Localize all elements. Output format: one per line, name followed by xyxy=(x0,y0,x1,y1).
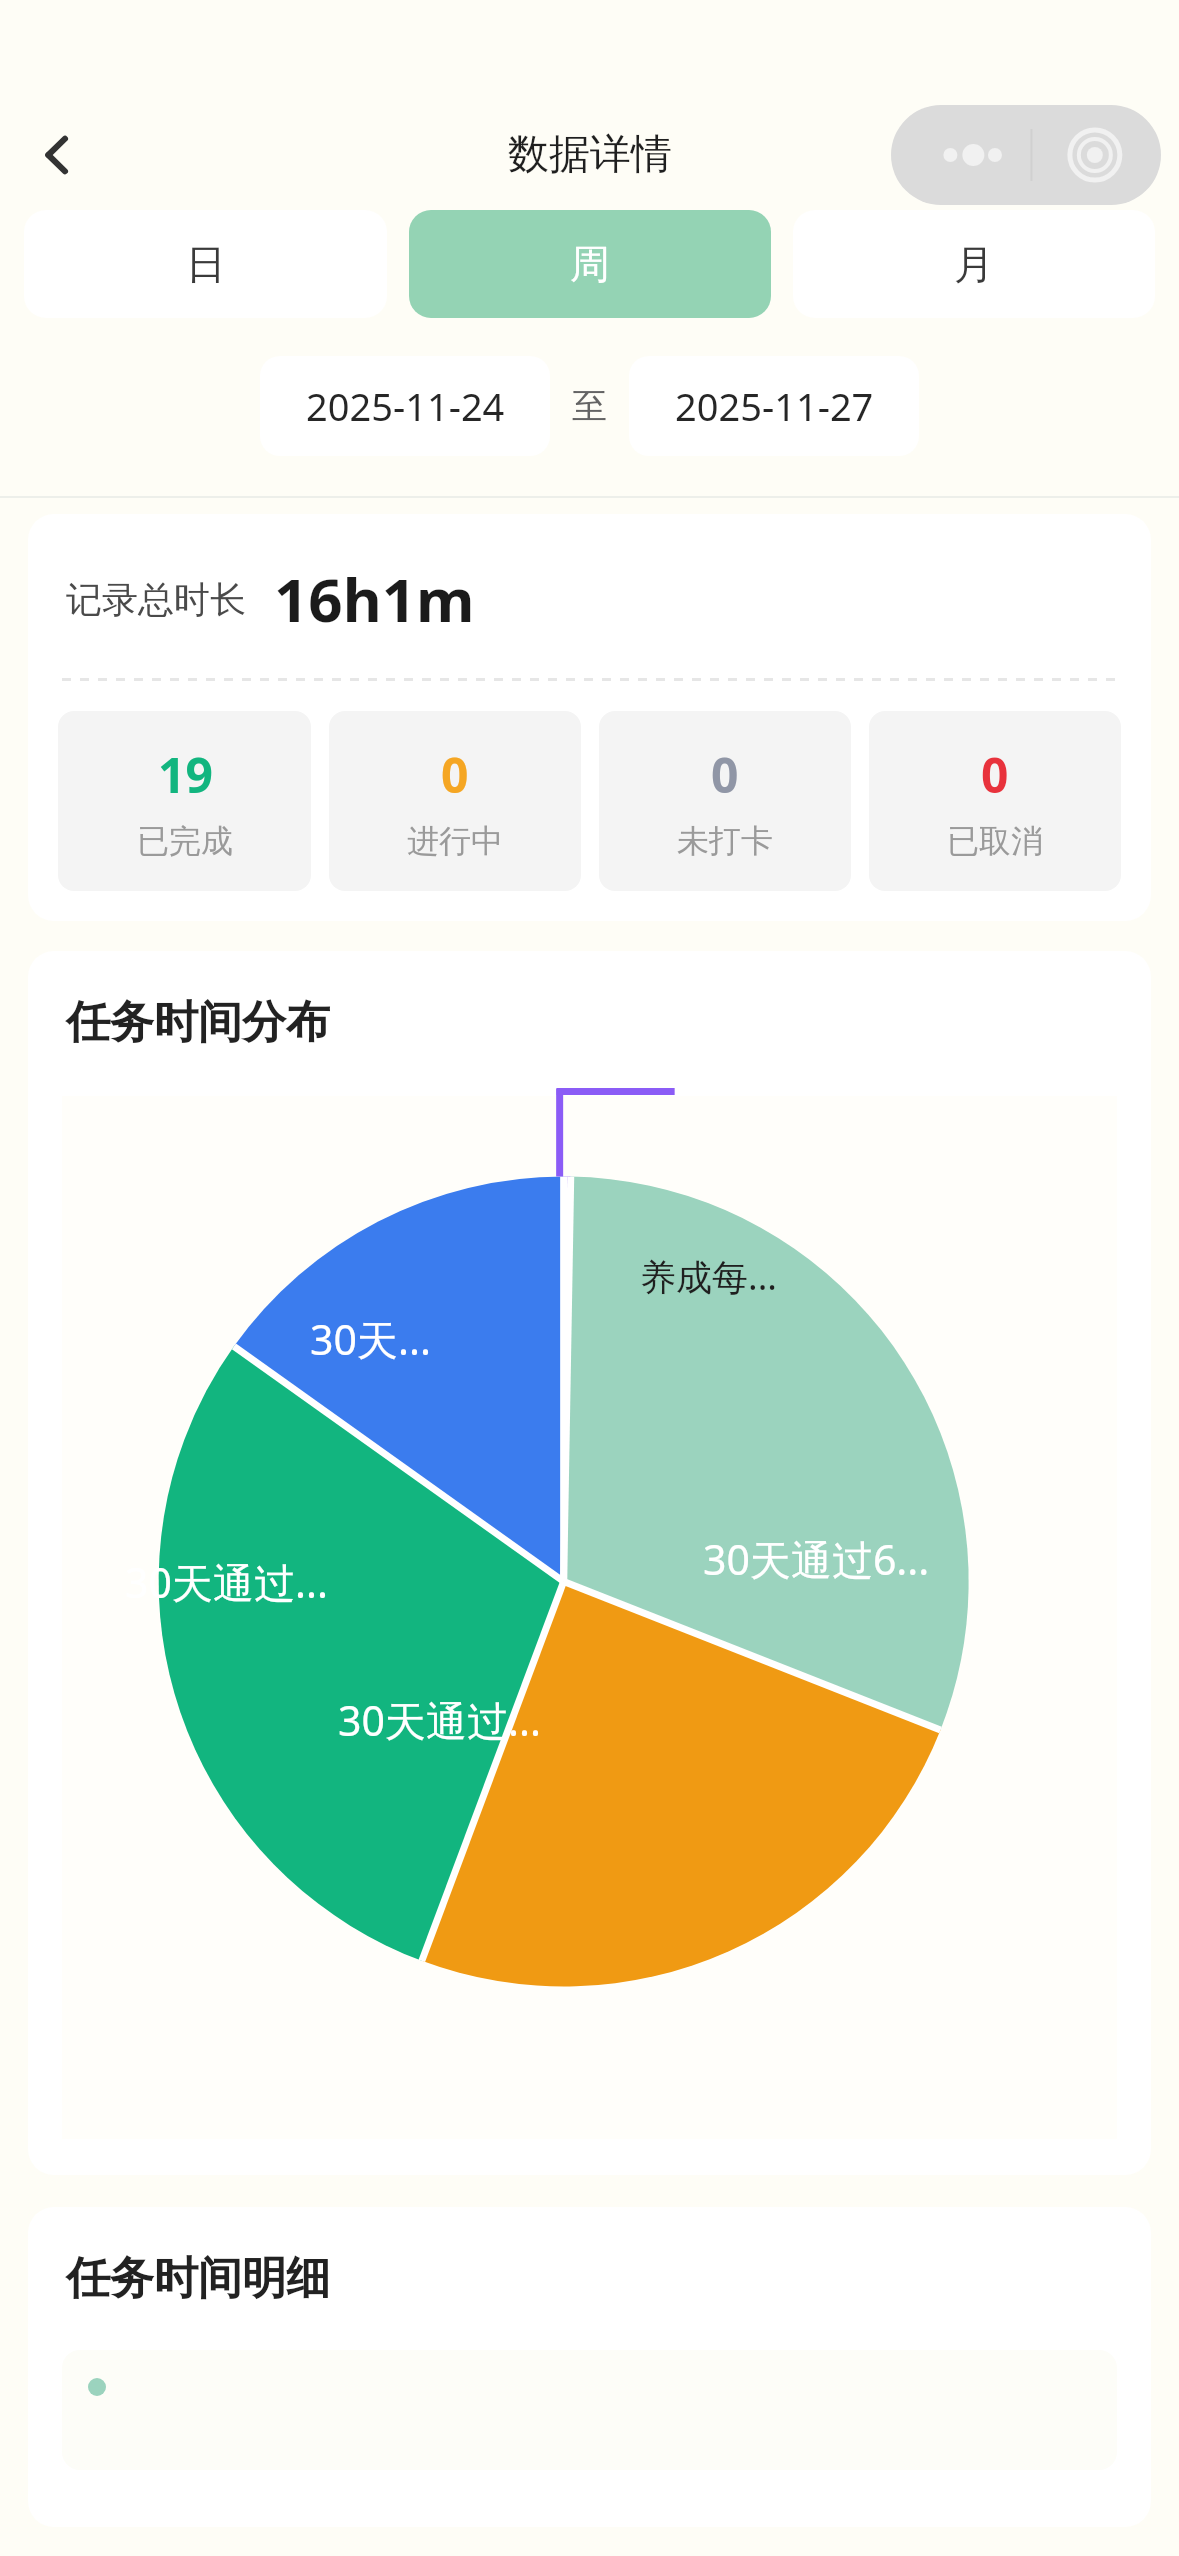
button[interactable]: Back xyxy=(22,119,94,191)
staticText: 已完成 xyxy=(137,821,233,861)
staticText: 2025-11-24 xyxy=(306,380,505,432)
staticText: 0 xyxy=(441,742,469,807)
staticText: 30天... xyxy=(310,1311,431,1367)
staticText: 19 xyxy=(158,742,213,807)
staticText: 0 xyxy=(711,742,739,807)
button[interactable]: 2025-11-27 xyxy=(629,356,919,456)
button[interactable]: 日 xyxy=(24,210,387,318)
staticText: 养成每... xyxy=(640,1252,777,1301)
staticText: 16h1m xyxy=(274,558,475,640)
button[interactable] xyxy=(62,2350,1117,2470)
button[interactable]: Menu and close xyxy=(891,105,1161,205)
staticText: 至 xyxy=(572,384,607,428)
staticText: 月 xyxy=(954,239,994,289)
staticText: 2025-11-27 xyxy=(675,380,874,432)
button[interactable]: 2025-11-24 xyxy=(260,356,550,456)
staticText: 记录总时长 xyxy=(66,577,246,622)
staticText: 任务时间明细 xyxy=(66,2251,330,2306)
button[interactable]: 0 xyxy=(329,711,581,891)
button[interactable]: 周 xyxy=(409,210,771,318)
staticText: 进行中 xyxy=(407,821,503,861)
staticText: 30天通过6... xyxy=(703,1531,930,1587)
button[interactable]: 19 xyxy=(58,711,311,891)
staticText: 周 xyxy=(570,239,610,289)
staticText: 任务时间分布 xyxy=(66,995,330,1050)
staticText: 30天通过... xyxy=(338,1692,541,1748)
staticText: 日 xyxy=(186,239,226,289)
staticText: 未打卡 xyxy=(677,821,773,861)
staticText: 已取消 xyxy=(947,821,1043,861)
button[interactable]: 0 xyxy=(599,711,851,891)
button[interactable]: 0 xyxy=(869,711,1121,891)
staticText: 30天通过... xyxy=(125,1554,328,1610)
staticText: 数据详情 xyxy=(508,129,672,181)
button[interactable]: 月 xyxy=(793,210,1155,318)
staticText: 0 xyxy=(981,742,1009,807)
